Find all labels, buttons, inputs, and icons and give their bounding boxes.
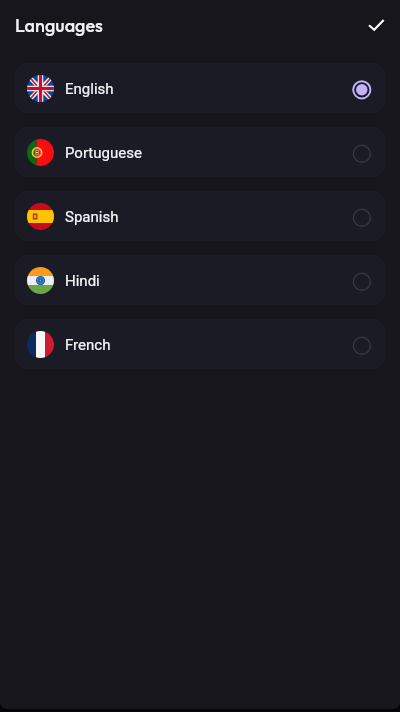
staticText: English [65,80,114,98]
staticText: Languages [15,14,103,37]
button[interactable]: English [15,63,385,113]
button[interactable]: Portuguese [15,127,385,177]
button[interactable]: Confirm selection [356,6,396,46]
button[interactable]: Spanish [15,191,385,241]
staticText: Portuguese [65,144,142,162]
button[interactable]: Hindi [15,255,385,305]
button[interactable]: French [15,319,385,369]
staticText: Spanish [65,208,119,226]
staticText: Hindi [65,272,100,290]
staticText: French [65,336,111,354]
